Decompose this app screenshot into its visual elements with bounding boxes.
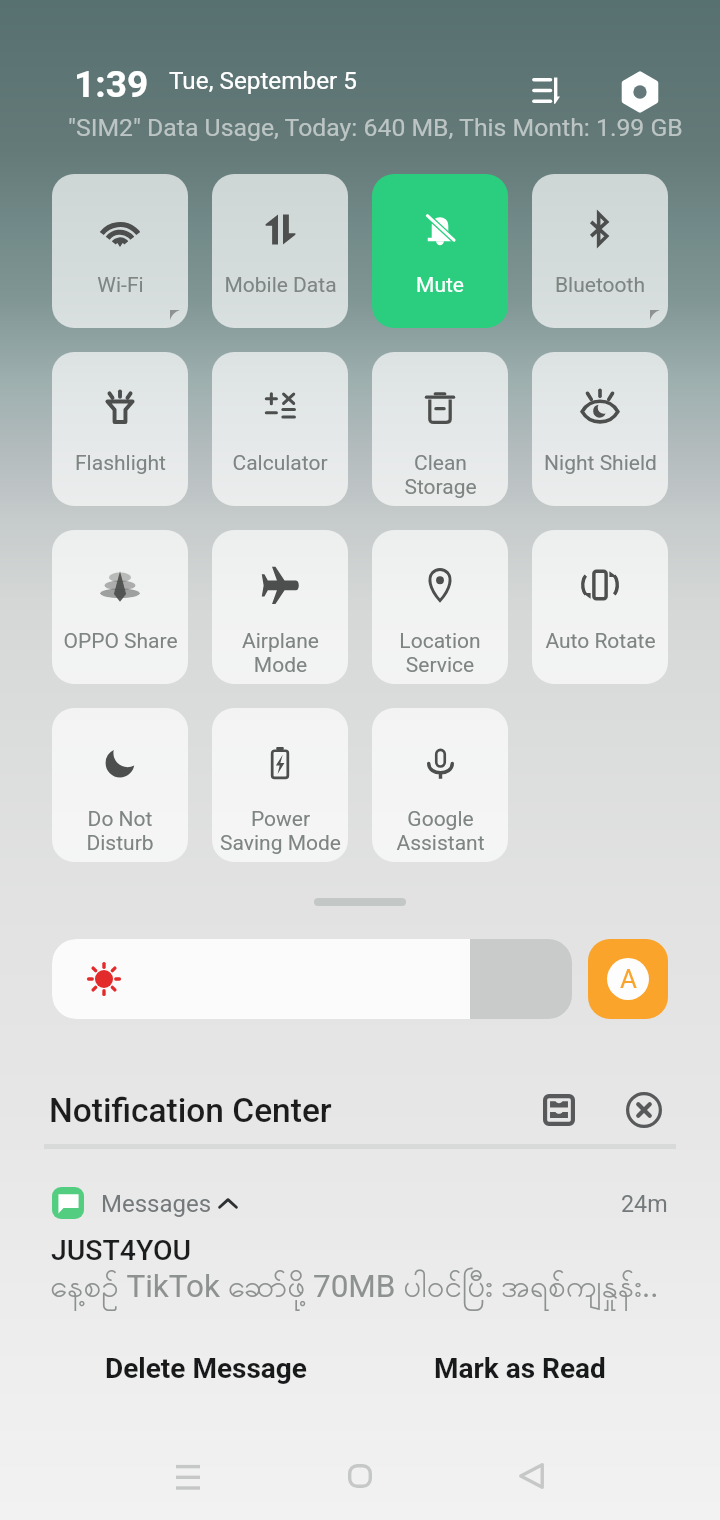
staticText: OPPO Share — [63, 629, 178, 654]
staticText: Wi-Fi — [97, 273, 144, 298]
staticText: Mobile Data — [224, 273, 337, 298]
button[interactable]: Auto Rotate — [532, 530, 668, 684]
staticText: Notification Center — [49, 1091, 332, 1130]
button[interactable]: Brightness — [52, 939, 572, 1019]
staticText: Google Assistant — [396, 807, 485, 855]
button[interactable]: Google Assistant — [372, 708, 508, 862]
button[interactable]: Back — [496, 1441, 566, 1511]
staticText: Airplane Mode — [242, 629, 319, 677]
button[interactable]: Clear all notifications — [620, 1086, 668, 1134]
button[interactable]: OPPO Share — [52, 530, 188, 684]
staticText: Mark as Read — [434, 1352, 606, 1385]
button[interactable]: Location Service — [372, 530, 508, 684]
staticText: Clean Storage — [404, 451, 477, 499]
staticText: 24m — [621, 1190, 668, 1217]
button[interactable]: Mark as Read — [366, 1338, 674, 1398]
button[interactable]: Mobile Data — [212, 174, 348, 328]
button[interactable]: Airplane Mode — [212, 530, 348, 684]
staticText: Power Saving Mode — [220, 807, 341, 855]
button[interactable]: Collapse notification — [214, 1190, 242, 1218]
staticText: Night Shield — [544, 451, 657, 476]
button[interactable]: Bluetooth — [532, 174, 668, 328]
staticText: Do Not Disturb — [86, 807, 154, 855]
button[interactable]: Do Not Disturb — [52, 708, 188, 862]
button[interactable]: Edit quick settings — [522, 66, 570, 114]
staticText: Mute — [416, 273, 464, 298]
staticText: Delete Message — [105, 1352, 307, 1385]
staticText: Auto Rotate — [545, 629, 656, 654]
staticText: Location Service — [399, 629, 481, 677]
button[interactable]: Auto brightness — [588, 939, 668, 1019]
staticText: Bluetooth — [555, 273, 645, 298]
staticText: နေ့စဉ် TikTok ဆော်ဖို့ 70MB ပါဝင်ပြီး အရ… — [50, 1266, 659, 1312]
staticText: A — [620, 964, 637, 994]
staticText: Flashlight — [75, 451, 166, 476]
button[interactable]: Mute — [372, 174, 508, 328]
button[interactable]: Home — [325, 1441, 395, 1511]
staticText: 1:39 — [74, 63, 149, 106]
staticText: Tue, September 5 — [169, 66, 357, 94]
button[interactable]: Flashlight — [52, 352, 188, 506]
button[interactable]: Delete Message — [52, 1338, 360, 1398]
button[interactable]: Clean Storage — [372, 352, 508, 506]
staticText: "SIM2" Data Usage, Today: 640 MB, This M… — [68, 113, 683, 142]
staticText: JUST4YOU — [51, 1234, 192, 1267]
button[interactable]: Manage notifications — [535, 1086, 583, 1134]
button[interactable]: Night Shield — [532, 352, 668, 506]
button[interactable]: Recent apps — [153, 1441, 223, 1511]
button[interactable]: Wi-Fi — [52, 174, 188, 328]
staticText: Calculator — [232, 451, 328, 476]
button[interactable]: Calculator — [212, 352, 348, 506]
staticText: Messages — [101, 1190, 212, 1218]
button[interactable]: Settings — [616, 68, 664, 116]
button[interactable]: Power Saving Mode — [212, 708, 348, 862]
